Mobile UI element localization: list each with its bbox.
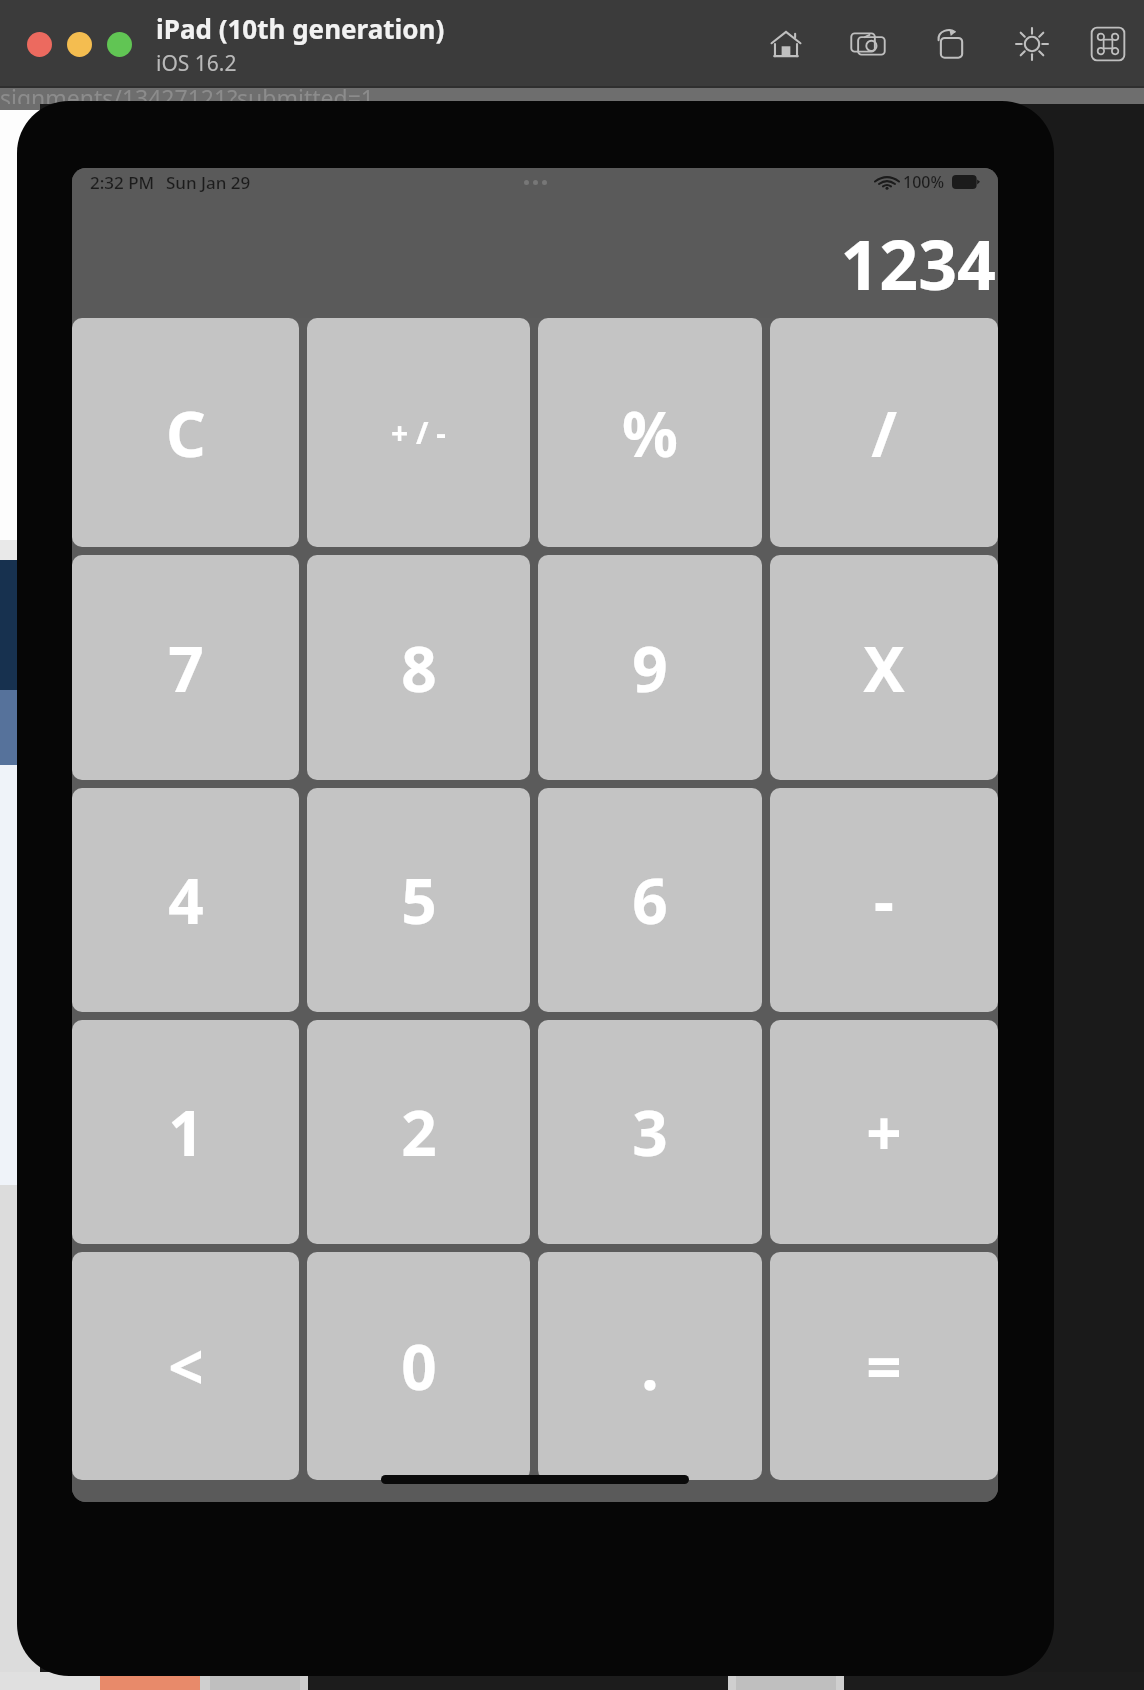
staticText: 5 xyxy=(401,858,437,942)
staticText: % xyxy=(622,391,678,475)
button[interactable]: . xyxy=(538,1252,762,1480)
button[interactable]: 5 xyxy=(307,788,530,1012)
button[interactable]: 8 xyxy=(307,555,530,780)
staticText: 3 xyxy=(632,1090,668,1174)
button[interactable]: < xyxy=(72,1252,299,1480)
staticText: + / - xyxy=(391,412,446,453)
staticText: 1234 xyxy=(840,217,996,310)
staticText: Sun Jan 29 xyxy=(166,171,251,194)
staticText: 1 xyxy=(168,1090,204,1174)
staticText: X xyxy=(863,626,905,710)
staticText: 2 xyxy=(401,1090,437,1174)
button[interactable]: 3 xyxy=(538,1020,762,1244)
staticText: = xyxy=(866,1324,902,1408)
staticText: 8 xyxy=(401,626,437,710)
staticText: iOS 16.2 xyxy=(156,49,237,78)
button[interactable] xyxy=(67,32,92,57)
staticText: iPad (10th generation) xyxy=(156,11,445,46)
staticText: signments/13427121?submitted=1 xyxy=(0,82,374,104)
button[interactable]: + xyxy=(770,1020,998,1244)
staticText: 100% xyxy=(903,171,945,193)
staticText: . xyxy=(641,1324,659,1408)
button[interactable]: Appearance xyxy=(1010,22,1054,66)
staticText: < xyxy=(168,1324,204,1408)
staticText: 6 xyxy=(632,858,668,942)
button[interactable]: / xyxy=(770,318,998,547)
button[interactable]: Rotate xyxy=(928,22,972,66)
staticText: 9 xyxy=(632,626,668,710)
staticText: C xyxy=(166,391,206,475)
button[interactable]: 1 xyxy=(72,1020,299,1244)
button[interactable]: X xyxy=(770,555,998,780)
staticText: 4 xyxy=(168,858,204,942)
button[interactable]: + / - xyxy=(307,318,530,547)
button[interactable]: 7 xyxy=(72,555,299,780)
button[interactable] xyxy=(107,32,132,57)
button[interactable]: 4 xyxy=(72,788,299,1012)
button[interactable]: 6 xyxy=(538,788,762,1012)
button[interactable]: Home xyxy=(764,22,808,66)
button[interactable] xyxy=(27,32,52,57)
staticText: 7 xyxy=(168,626,204,710)
button[interactable]: 9 xyxy=(538,555,762,780)
button[interactable]: 0 xyxy=(307,1252,530,1480)
button[interactable]: C xyxy=(72,318,299,547)
staticText: 2:32 PM xyxy=(90,171,155,194)
staticText: / xyxy=(871,391,897,475)
staticText: 0 xyxy=(401,1324,437,1408)
button[interactable]: 2 xyxy=(307,1020,530,1244)
staticText: + xyxy=(866,1090,902,1174)
button[interactable]: - xyxy=(770,788,998,1012)
button[interactable]: Screenshot xyxy=(846,22,890,66)
button[interactable]: % xyxy=(538,318,762,547)
button[interactable]: Keyboard shortcuts xyxy=(1086,22,1130,66)
staticText: - xyxy=(874,858,894,942)
button[interactable]: = xyxy=(770,1252,998,1480)
